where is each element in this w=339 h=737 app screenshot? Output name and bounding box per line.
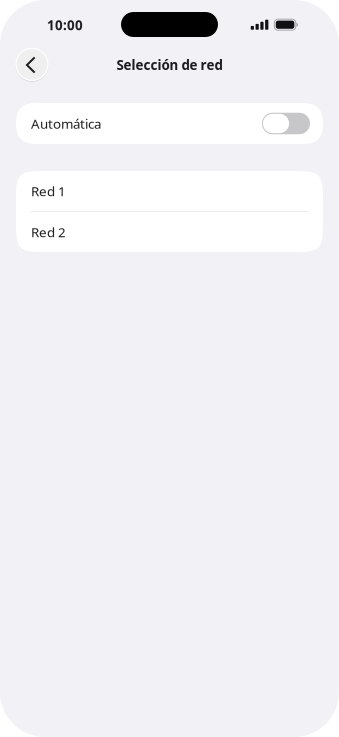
- button[interactable]: Automática: [16, 103, 323, 144]
- staticText: Automática: [31, 115, 101, 132]
- button[interactable]: Red 2: [16, 212, 323, 252]
- staticText: Selección de red: [116, 56, 222, 74]
- button[interactable]: Red 1: [16, 171, 323, 211]
- staticText: 10:00: [47, 16, 83, 34]
- staticText: Red 2: [31, 223, 66, 241]
- button[interactable]: Back: [15, 47, 49, 81]
- staticText: Red 1: [31, 182, 66, 200]
